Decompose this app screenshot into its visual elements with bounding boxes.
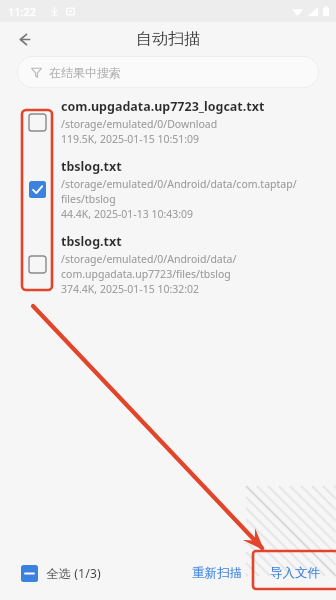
- staticText: com.upgadata.up7723/files/tbslog: [61, 267, 231, 281]
- button[interactable]: tbslog.txt: [0, 227, 336, 302]
- staticText: 全选 (1/3): [46, 565, 101, 582]
- button[interactable]: tbslog.txt: [0, 152, 336, 227]
- staticText: tbslog.txt: [61, 158, 122, 175]
- button[interactable]: 全选 (1/3): [17, 561, 105, 586]
- button[interactable]: 导入文件: [264, 559, 326, 587]
- staticText: /storage/emulated/0/Download: [61, 117, 218, 131]
- staticText: 重新扫描: [192, 565, 242, 581]
- button[interactable]: com.upgadata.up7723_logcat.txt: [0, 92, 336, 152]
- staticText: 11:22: [8, 4, 37, 19]
- button[interactable]: 重新扫描: [184, 559, 250, 587]
- staticText: /storage/emulated/0/Android/data/com.tap…: [61, 177, 297, 191]
- button[interactable]: 在结果中搜索: [17, 56, 319, 88]
- staticText: 自动扫描: [136, 29, 200, 49]
- staticText: com.upgadata.up7723_logcat.txt: [61, 98, 265, 115]
- staticText: 374.4K, 2025-01-15 10:32:02: [61, 282, 200, 296]
- staticText: 导入文件: [270, 565, 320, 581]
- staticText: /storage/emulated/0/Android/data/: [61, 252, 237, 266]
- staticText: 44.4K, 2025-01-13 10:43:09: [61, 207, 194, 221]
- staticText: files/tbslog: [61, 192, 116, 206]
- staticText: 在结果中搜索: [49, 65, 121, 80]
- button[interactable]: Back: [8, 23, 40, 55]
- staticText: tbslog.txt: [61, 233, 122, 250]
- staticText: 119.5K, 2025-01-15 10:51:09: [61, 132, 200, 146]
